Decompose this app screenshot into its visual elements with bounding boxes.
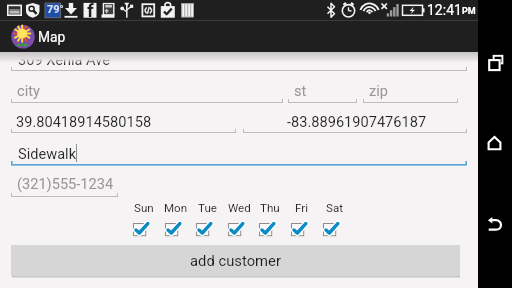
staticText: -83.88961907476187	[287, 113, 427, 130]
button[interactable]: Thu	[254, 201, 284, 237]
button[interactable]: Home	[478, 127, 512, 161]
staticText: zip	[369, 82, 388, 99]
staticText: PM	[462, 6, 476, 17]
staticText: Sidewalk	[18, 145, 77, 162]
button[interactable]: Sun	[128, 201, 158, 237]
button[interactable]: Mon	[160, 201, 190, 237]
button[interactable]: Recents	[478, 47, 512, 81]
button[interactable]: Back	[478, 207, 512, 241]
staticText: (321)555-1234	[17, 175, 114, 192]
staticText: Sat	[326, 201, 343, 215]
staticText: 309 Xenia Ave	[18, 51, 110, 68]
staticText: f	[87, 0, 94, 20]
staticText: Fri	[295, 201, 309, 215]
staticText: 12:41	[427, 2, 462, 18]
staticText: add customer	[190, 252, 281, 269]
staticText: Tue	[198, 201, 217, 215]
staticText: Thu	[260, 201, 280, 215]
button[interactable]: Wed	[223, 201, 253, 237]
staticText: Mon	[164, 201, 188, 215]
staticText: Sun	[134, 201, 154, 215]
button[interactable]: Tue	[191, 201, 221, 237]
button[interactable]: Fri	[286, 201, 316, 237]
staticText: Wed	[228, 201, 251, 215]
button[interactable]: add customer	[11, 245, 460, 276]
staticText: city	[17, 82, 40, 99]
staticText: st	[294, 82, 307, 99]
staticText: 79°	[47, 3, 64, 16]
staticText: 39.80418914580158	[16, 113, 152, 130]
staticText: Map	[38, 29, 66, 45]
button[interactable]: Sat	[318, 201, 348, 237]
